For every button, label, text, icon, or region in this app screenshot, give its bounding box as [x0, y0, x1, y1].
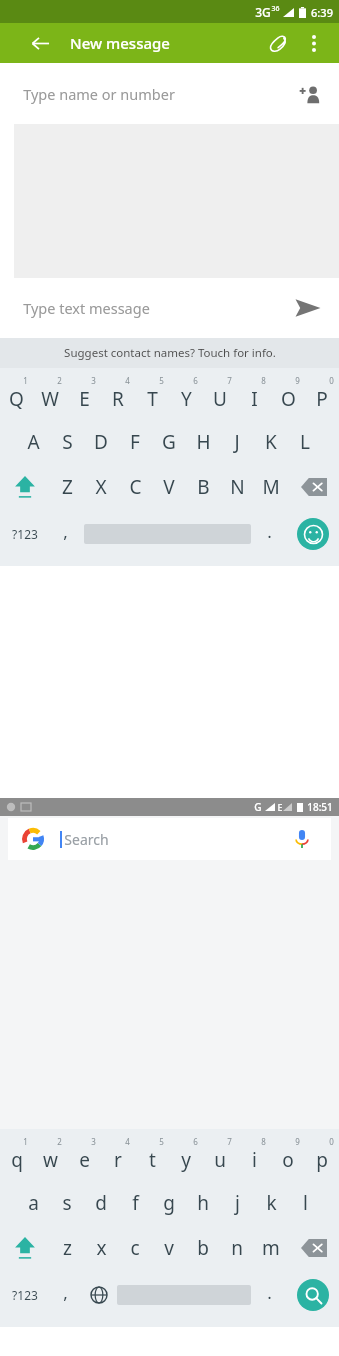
button[interactable]: X	[84, 464, 118, 510]
button[interactable]: .	[253, 1271, 286, 1319]
button[interactable]: Shift	[0, 464, 50, 510]
button[interactable]: C	[118, 464, 152, 510]
staticText: 2	[57, 375, 62, 386]
button[interactable]: i	[237, 1133, 271, 1181]
button[interactable]: y	[169, 1133, 203, 1181]
button[interactable]: q	[0, 1133, 33, 1181]
staticText: 6	[193, 1136, 198, 1147]
button[interactable]: J	[220, 420, 254, 464]
button[interactable]: Type text message	[0, 278, 339, 338]
button[interactable]: b	[186, 1225, 220, 1271]
button[interactable]: p	[305, 1133, 339, 1181]
staticText: g	[163, 1190, 175, 1216]
staticText: 1	[23, 375, 28, 386]
button[interactable]: S	[50, 420, 84, 464]
button[interactable]: Type name or number	[0, 63, 339, 124]
staticText: u	[214, 1147, 226, 1173]
button[interactable]: m	[254, 1225, 288, 1271]
button[interactable]: Delete	[288, 464, 339, 510]
button[interactable]: ?123	[0, 1271, 49, 1319]
button[interactable]: s	[50, 1181, 84, 1225]
button[interactable]: ,	[49, 1271, 82, 1319]
button[interactable]: P	[305, 372, 339, 420]
staticText: X	[95, 474, 107, 500]
button[interactable]: h	[186, 1181, 220, 1225]
staticText: t	[149, 1147, 156, 1173]
button[interactable]: f	[118, 1181, 152, 1225]
staticText: 6	[193, 375, 198, 386]
staticText: New message	[70, 33, 170, 53]
button[interactable]: U	[203, 372, 237, 420]
button[interactable]: l	[288, 1181, 322, 1225]
button[interactable]: u	[203, 1133, 237, 1181]
button[interactable]: Emoji	[286, 510, 339, 558]
button[interactable]: Suggest contact names? Touch for info.	[0, 338, 339, 368]
button[interactable]: O	[271, 372, 305, 420]
button[interactable]: Q	[0, 372, 33, 420]
button[interactable]: .	[253, 510, 286, 558]
button[interactable]: G	[152, 420, 186, 464]
staticText: y	[181, 1147, 191, 1173]
button[interactable]: o	[271, 1133, 305, 1181]
button[interactable]: V	[152, 464, 186, 510]
button[interactable]: v	[152, 1225, 186, 1271]
staticText: E	[79, 386, 90, 412]
button[interactable]: More options	[301, 30, 327, 56]
button[interactable]: t	[135, 1133, 169, 1181]
button[interactable]: c	[118, 1225, 152, 1271]
button[interactable]: Shift	[0, 1225, 50, 1271]
button[interactable]: d	[84, 1181, 118, 1225]
staticText: x	[96, 1235, 107, 1261]
button[interactable]: Search	[8, 818, 331, 860]
button[interactable]: L	[288, 420, 322, 464]
staticText: ,	[63, 1281, 68, 1304]
button[interactable]: g	[152, 1181, 186, 1225]
button[interactable]: K	[254, 420, 288, 464]
button[interactable]: Back	[26, 29, 54, 57]
button[interactable]: Send	[291, 291, 325, 325]
button[interactable]: I	[237, 372, 271, 420]
button[interactable]: a	[16, 1181, 50, 1225]
button[interactable]: k	[254, 1181, 288, 1225]
staticText: ?123	[12, 526, 38, 542]
button[interactable]: x	[84, 1225, 118, 1271]
button[interactable]: M	[254, 464, 288, 510]
button[interactable]: Voice search	[289, 826, 315, 852]
button[interactable]: Add contact	[295, 79, 325, 109]
button[interactable]: Search	[286, 1271, 339, 1319]
button[interactable]: r	[101, 1133, 135, 1181]
button[interactable]: z	[50, 1225, 84, 1271]
staticText: 7	[227, 1136, 232, 1147]
staticText: q	[11, 1147, 23, 1173]
button[interactable]: T	[135, 372, 169, 420]
button[interactable]: Z	[50, 464, 84, 510]
button[interactable]: F	[118, 420, 152, 464]
button[interactable]: Delete	[288, 1225, 339, 1271]
button[interactable]: ?123	[0, 510, 49, 558]
button[interactable]: Y	[169, 372, 203, 420]
staticText: .	[267, 520, 272, 543]
button[interactable]: H	[186, 420, 220, 464]
button[interactable]: w	[33, 1133, 67, 1181]
button[interactable]: e	[67, 1133, 101, 1181]
button[interactable]: B	[186, 464, 220, 510]
button[interactable]: E	[67, 372, 101, 420]
button[interactable]: W	[33, 372, 67, 420]
button[interactable]: Attach	[263, 28, 293, 58]
button[interactable]: n	[220, 1225, 254, 1271]
button[interactable]: R	[101, 372, 135, 420]
button[interactable]: Change language	[82, 1271, 115, 1319]
staticText: o	[282, 1147, 294, 1173]
staticText: k	[266, 1190, 277, 1216]
button[interactable]: N	[220, 464, 254, 510]
staticText: s	[62, 1190, 72, 1216]
button[interactable]: ,	[49, 510, 82, 558]
button[interactable]: j	[220, 1181, 254, 1225]
staticText: Z	[62, 474, 73, 500]
staticText: .	[267, 1281, 272, 1304]
button[interactable]: D	[84, 420, 118, 464]
staticText: ,	[63, 520, 68, 543]
button[interactable]: A	[16, 420, 50, 464]
